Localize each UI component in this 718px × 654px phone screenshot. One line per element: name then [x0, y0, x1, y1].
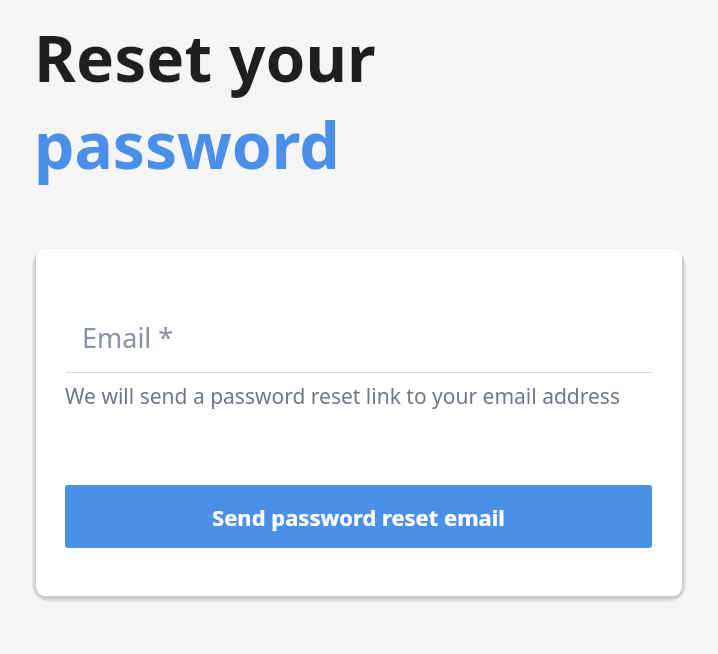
staticText: Reset your [34, 14, 376, 101]
staticText: Send password reset email [212, 502, 505, 532]
staticText: Email * [82, 319, 174, 356]
staticText: We will send a password reset link to yo… [65, 382, 620, 411]
staticText: password [34, 101, 340, 188]
button[interactable]: Email * [65, 312, 653, 360]
button[interactable]: Send password reset email [65, 485, 652, 548]
